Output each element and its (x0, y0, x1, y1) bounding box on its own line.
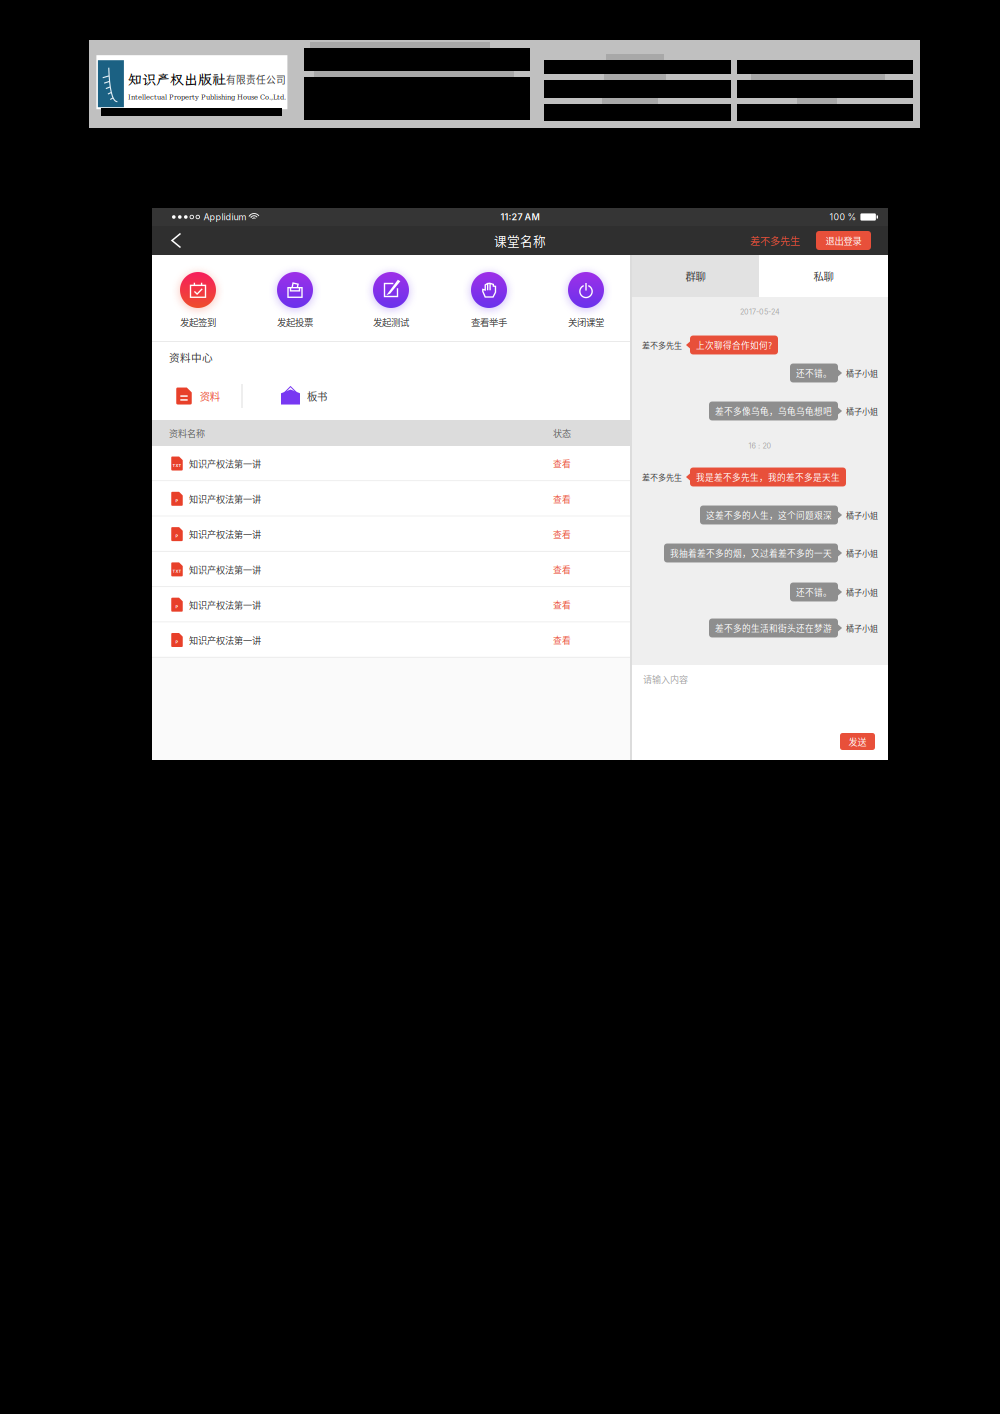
staticText: 查看 (553, 598, 571, 611)
staticText: 橘子小姐 (846, 367, 878, 379)
staticText: 发起测试 (373, 315, 409, 329)
staticText: 知识产权法第一讲 (189, 563, 261, 576)
staticText: 退出登录 (825, 234, 861, 247)
staticText: 我抽着差不多的烟，又过着差不多的一天 (670, 547, 832, 559)
button[interactable]: 发起测试 (349, 255, 433, 341)
staticText: 查看 (553, 563, 571, 576)
staticText: 知识产权法第一讲 (189, 633, 261, 647)
staticText: 还不错。 (796, 586, 832, 598)
staticText: P (175, 640, 178, 644)
staticText: 还不错。 (796, 367, 832, 379)
staticText: 资料中心 (169, 349, 213, 365)
staticText: 关闭课堂 (568, 315, 604, 329)
staticText: 差不多的生活和街头还在梦游 (715, 622, 832, 634)
staticText: 群聊 (685, 268, 705, 284)
staticText: P (175, 534, 178, 538)
staticText: 橘子小姐 (846, 405, 878, 417)
staticText: 发送 (848, 735, 866, 748)
button[interactable]: TXT (152, 446, 630, 481)
button[interactable]: 私聊 (759, 255, 888, 297)
staticText: 发起签到 (180, 315, 216, 329)
staticText: TXT (172, 463, 181, 468)
staticText: P (175, 604, 178, 609)
staticText: 差不多像乌龟，乌龟乌龟想吧 (715, 405, 832, 417)
staticText: 橘子小姐 (846, 586, 878, 598)
button[interactable]: P (152, 622, 630, 658)
staticText: 差不多先生 (750, 233, 800, 248)
staticText: 橘子小姐 (846, 509, 878, 521)
staticText: 资料 (200, 388, 220, 404)
staticText: 差不多先生 (642, 471, 682, 483)
staticText: 16：20 (748, 441, 771, 450)
staticText: 资料名称 (169, 426, 205, 439)
button[interactable]: 差不多先生 (750, 228, 800, 253)
button[interactable]: P (152, 587, 630, 622)
staticText: 知识产权法第一讲 (189, 527, 261, 541)
staticText: 查看 (553, 492, 571, 505)
button[interactable]: 群聊 (632, 255, 759, 297)
staticText: 2017-05-24 (740, 308, 780, 316)
staticText: 知识产权法第一讲 (189, 492, 261, 505)
staticText: TXT (172, 569, 181, 574)
button[interactable]: 查看举手 (447, 255, 531, 341)
staticText: 查看 (553, 634, 571, 646)
staticText: 差不多先生 (642, 339, 682, 351)
staticText: 橘子小姐 (846, 622, 878, 634)
button[interactable]: 退出登录 (816, 231, 871, 250)
staticText: 查看举手 (471, 315, 507, 329)
button[interactable]: TXT (152, 552, 630, 587)
staticText: 板书 (307, 388, 327, 404)
button[interactable]: P (152, 517, 630, 552)
staticText: 橘子小姐 (846, 547, 878, 559)
staticText: 课堂名称 (494, 231, 546, 250)
staticText: 发起投票 (277, 315, 313, 329)
button[interactable]: 资料 (171, 379, 225, 412)
staticText: 100 % (829, 212, 856, 222)
staticText: P (175, 498, 178, 503)
staticText: 上次聊得合作如何? (696, 339, 772, 351)
staticText: 这差不多的人生，这个问题艰深 (706, 509, 832, 521)
staticText: 11:27 AM (500, 211, 539, 222)
staticText: 知识产权出版社 (128, 70, 226, 88)
button[interactable]: P (152, 481, 630, 517)
button[interactable]: 发起签到 (156, 255, 240, 341)
staticText: 查看 (553, 528, 571, 540)
staticText: Applidium (204, 211, 247, 222)
staticText: 查看 (553, 457, 571, 470)
staticText: 我是差不多先生，我的差不多是天生 (696, 471, 840, 483)
staticText: 状态 (553, 426, 571, 439)
button[interactable]: 发起投票 (253, 255, 337, 341)
staticText: 请输入内容 (643, 672, 688, 685)
staticText: Intellectual Property Publishing House C… (128, 93, 286, 101)
button[interactable]: 板书 (276, 379, 332, 412)
staticText: 私聊 (813, 268, 833, 284)
staticText: 有限责任公司 (226, 72, 286, 86)
button[interactable]: Back (152, 226, 196, 254)
button[interactable]: 关闭课堂 (544, 255, 628, 341)
staticText: 知识产权法第一讲 (189, 457, 261, 470)
button[interactable]: 发送 (840, 733, 875, 750)
staticText: 知识产权法第一讲 (189, 598, 261, 611)
